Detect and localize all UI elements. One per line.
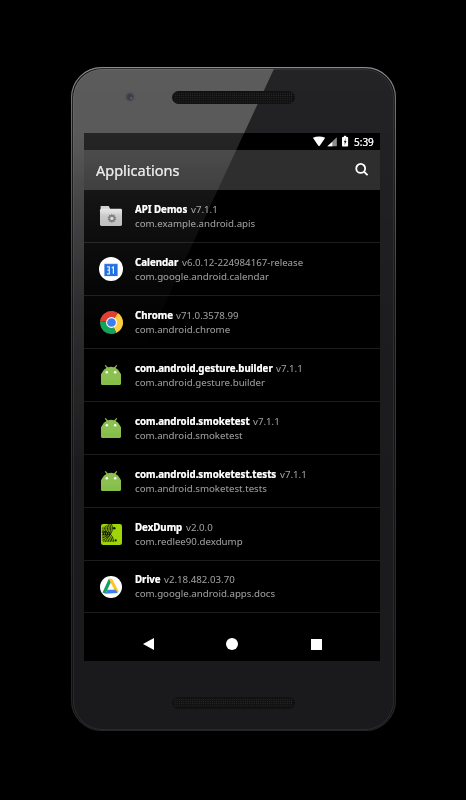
staticText: com.redlee90.dexdump bbox=[135, 535, 243, 548]
staticText: com.google.android.calendar bbox=[135, 270, 269, 283]
button[interactable]: API Demos bbox=[84, 190, 380, 243]
staticText: 5:39 bbox=[354, 135, 374, 149]
staticText: com.android.chrome bbox=[135, 323, 231, 336]
staticText: Drive bbox=[135, 573, 161, 586]
staticText: com.android.gesture.builder bbox=[135, 376, 266, 389]
button[interactable]: com.android.smoketest.tests bbox=[84, 455, 380, 508]
staticText: v7.1.1 bbox=[253, 415, 280, 428]
staticText: Chrome bbox=[135, 309, 173, 322]
button[interactable]: Recents bbox=[296, 624, 336, 664]
staticText: v7.1.1 bbox=[191, 203, 218, 216]
button[interactable]: com.android.smoketest bbox=[84, 402, 380, 455]
staticText: com.android.smoketest.tests bbox=[135, 482, 267, 495]
staticText: DexDump bbox=[135, 521, 183, 534]
button[interactable]: Back bbox=[128, 624, 168, 664]
staticText: com.android.gesture.builder bbox=[135, 362, 273, 375]
button[interactable]: Chrome bbox=[84, 296, 380, 349]
staticText: v7.1.1 bbox=[276, 362, 303, 375]
staticText: Applications bbox=[96, 160, 180, 180]
staticText: Calendar bbox=[135, 256, 179, 269]
button[interactable]: Drive bbox=[84, 561, 380, 613]
staticText: v2.18.482.03.70 bbox=[164, 573, 235, 586]
staticText: com.android.smoketest bbox=[135, 415, 250, 428]
staticText: API Demos bbox=[135, 203, 188, 216]
button[interactable]: com.android.gesture.builder bbox=[84, 349, 380, 402]
staticText: com.android.smoketest.tests bbox=[135, 468, 277, 481]
staticText: v71.0.3578.99 bbox=[176, 309, 239, 322]
button[interactable]: Search bbox=[347, 155, 377, 185]
staticText: v7.1.1 bbox=[280, 468, 307, 481]
staticText: com.android.smoketest bbox=[135, 429, 243, 442]
button[interactable]: DexDump bbox=[84, 508, 380, 561]
button[interactable]: Home bbox=[212, 624, 252, 664]
staticText: com.google.android.apps.docs bbox=[135, 587, 276, 600]
button[interactable]: Calendar bbox=[84, 243, 380, 296]
staticText: com.example.android.apis bbox=[135, 217, 256, 230]
staticText: v6.0.12-224984167-release bbox=[182, 256, 304, 269]
staticText: v2.0.0 bbox=[186, 521, 213, 534]
